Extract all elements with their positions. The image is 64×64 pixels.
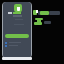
button[interactable]: App icon <box>14 4 22 12</box>
button[interactable] <box>5 34 29 38</box>
